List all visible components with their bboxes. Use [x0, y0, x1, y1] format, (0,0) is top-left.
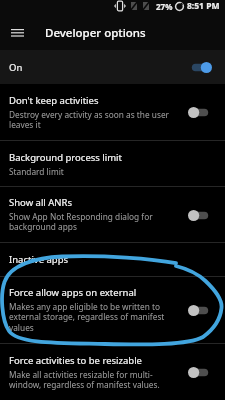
staticText: Makes any app eligible to be written to … [9, 301, 165, 334]
button[interactable]: Inactive apps [0, 243, 225, 276]
staticText: 8:51 PM [187, 0, 220, 12]
staticText: Background process limit [9, 151, 122, 164]
button[interactable]: Toggle Force activities to be resizable [188, 365, 212, 379]
button[interactable]: On [0, 50, 225, 84]
button[interactable]: Show all ANRs [0, 187, 225, 242]
staticText: Show App Not Responding dialog for backg… [9, 211, 153, 233]
staticText: Destroy every activity as soon as the us… [9, 109, 169, 131]
staticText: Make all activities resizable for multi-… [9, 369, 160, 391]
staticText: Force activities to be resizable [9, 354, 142, 367]
staticText: Developer options [45, 25, 146, 41]
staticText: On [9, 61, 23, 74]
button[interactable]: Force allow apps on external [0, 277, 225, 343]
button[interactable]: Toggle Show all ANRs [188, 208, 212, 222]
staticText: Inactive apps [9, 253, 69, 266]
button[interactable]: Toggle Force allow apps on external [188, 303, 212, 317]
button[interactable]: Don't keep activities [0, 84, 225, 140]
staticText: Don't keep activities [9, 94, 99, 107]
staticText: Show all ANRs [9, 196, 73, 209]
button[interactable]: Force activities to be resizable [0, 344, 225, 400]
staticText: Force allow apps on external [9, 286, 137, 299]
button[interactable]: Open navigation menu [5, 21, 29, 45]
staticText: Standard limit [9, 166, 64, 177]
button[interactable]: Background process limit [0, 141, 225, 186]
button[interactable]: Toggle Don't keep activities [188, 105, 212, 119]
button[interactable]: Developer options on [188, 60, 212, 74]
staticText: 27% [156, 1, 173, 12]
